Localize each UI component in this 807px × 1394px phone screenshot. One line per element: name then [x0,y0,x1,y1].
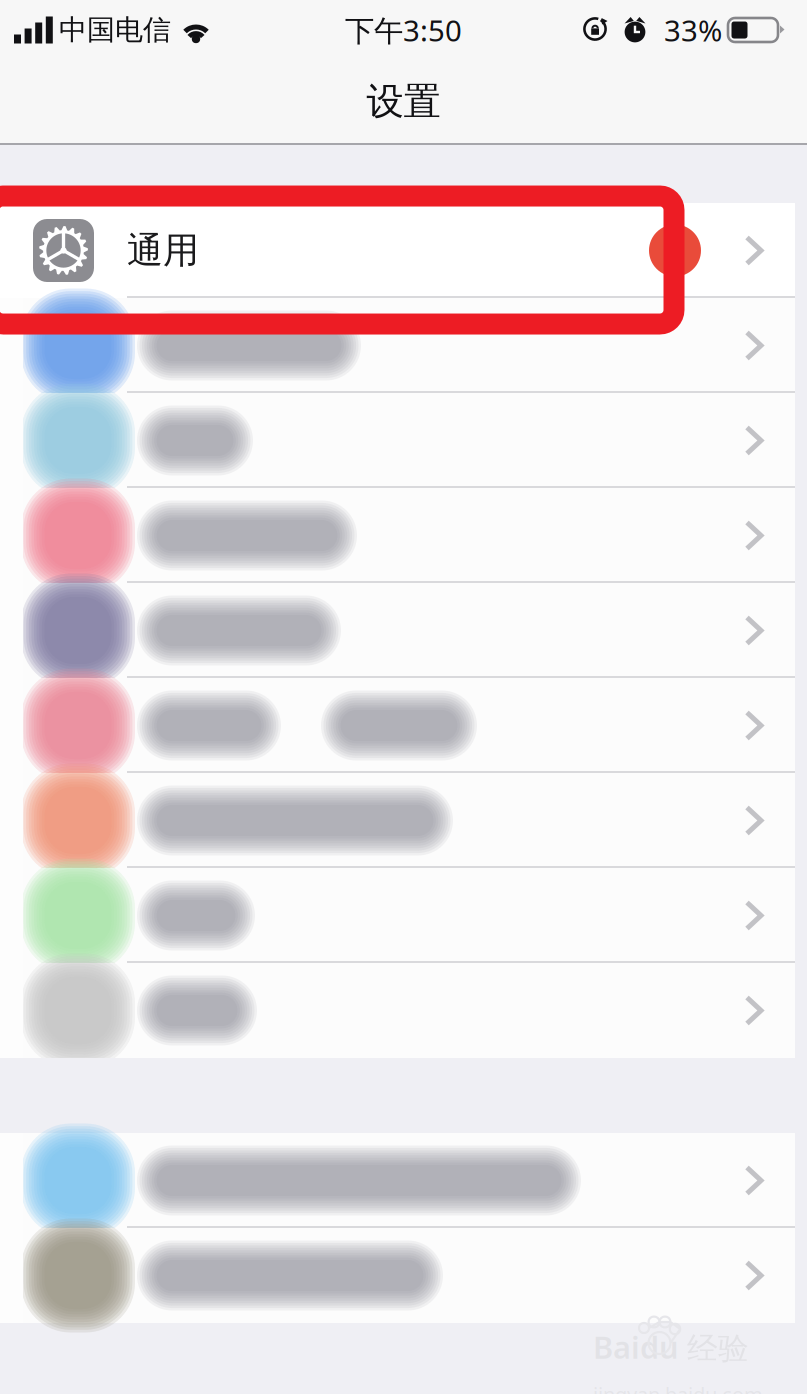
button[interactable] [0,868,795,963]
staticText: 下午3:50 [345,10,462,49]
button[interactable] [0,488,795,583]
button[interactable] [0,298,795,393]
staticText: 33% [664,10,722,49]
staticText: 中国电信 [59,13,171,47]
button[interactable] [0,583,795,678]
staticText: jingyan.baidu.com [593,1381,763,1394]
staticText: 通用 [127,228,199,273]
staticText: 设置 [366,79,440,124]
button[interactable] [0,963,795,1058]
button[interactable] [0,1133,795,1228]
button[interactable] [0,773,795,868]
button[interactable]: 通用 [0,203,795,298]
button[interactable] [0,1228,795,1323]
button[interactable] [0,393,795,488]
staticText: Baidu 经验 [593,1327,749,1367]
button[interactable] [0,678,795,773]
